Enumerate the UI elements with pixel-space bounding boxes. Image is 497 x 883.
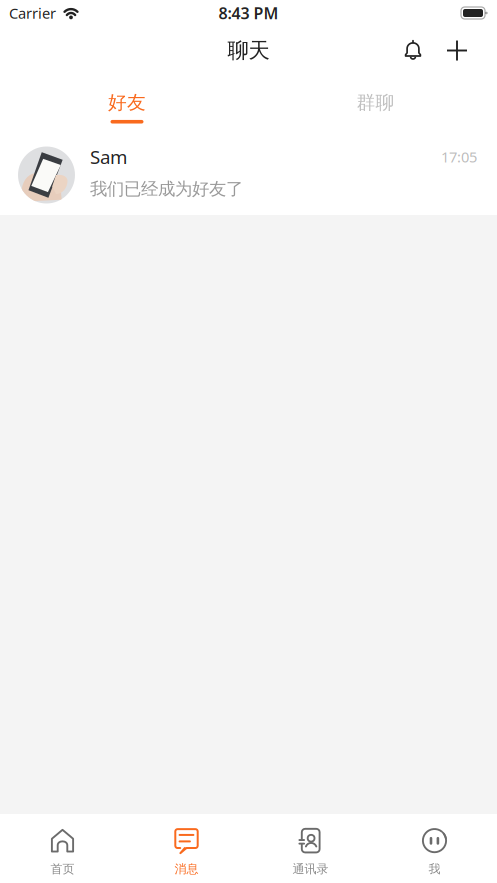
staticText: 我 (428, 862, 440, 876)
staticText: 首页 (50, 862, 74, 876)
staticText: 消息 (174, 862, 198, 876)
button[interactable]: 我 (372, 814, 496, 883)
button[interactable]: Sam (0, 135, 497, 215)
staticText: 17:05 (441, 147, 477, 167)
button[interactable]: 首页 (0, 814, 124, 883)
button[interactable]: 通讯录 (248, 814, 372, 883)
staticText: 我们已经成为好友了 (90, 178, 243, 199)
button[interactable]: Notifications (391, 26, 435, 75)
staticText: 好友 (108, 91, 146, 114)
button[interactable]: Add (435, 26, 479, 75)
staticText: 8:43 PM (218, 2, 278, 24)
button[interactable]: 好友 (0, 75, 254, 135)
staticText: Carrier (9, 3, 56, 23)
staticText: Sam (90, 144, 127, 169)
button[interactable]: 消息 (124, 814, 248, 883)
button[interactable]: 群聊 (254, 75, 497, 135)
staticText: 通讯录 (292, 862, 328, 876)
staticText: 群聊 (356, 91, 394, 114)
staticText: 聊天 (227, 37, 269, 64)
